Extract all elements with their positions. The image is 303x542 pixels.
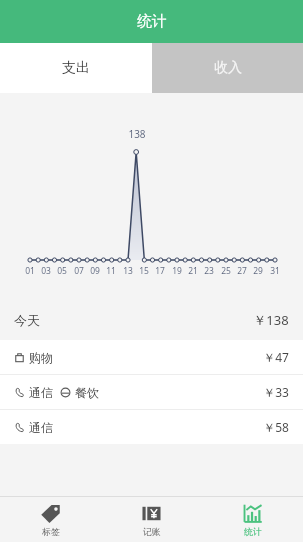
staticText: 138 <box>128 127 146 141</box>
staticText: 25 <box>221 265 231 277</box>
staticText: 统计 <box>137 12 167 31</box>
staticText: 19 <box>172 265 182 277</box>
staticText: 收入 <box>214 59 242 77</box>
staticText: 09 <box>90 265 100 277</box>
staticText: ￥138 <box>253 311 289 329</box>
staticText: 29 <box>253 265 263 277</box>
staticText: 21 <box>188 265 198 277</box>
staticText: 支出 <box>62 59 90 77</box>
staticText: 07 <box>74 265 84 277</box>
button[interactable]: 购物 <box>0 340 303 374</box>
staticText: 05 <box>57 265 67 277</box>
staticText: 购物 <box>29 350 53 365</box>
staticText: ￥47 <box>263 349 289 365</box>
button[interactable]: 今天 <box>0 300 303 340</box>
staticText: 15 <box>139 265 149 277</box>
button[interactable]: 统计 <box>202 497 303 542</box>
staticText: 记账 <box>143 526 161 537</box>
staticText: 餐饮 <box>75 385 99 400</box>
button[interactable]: 标签 <box>0 497 101 542</box>
button[interactable]: 收入 <box>152 43 303 93</box>
staticText: 01 <box>25 265 35 277</box>
staticText: 27 <box>237 265 247 277</box>
button[interactable]: 通信 <box>0 410 303 444</box>
staticText: 统计 <box>244 526 262 537</box>
staticText: 今天 <box>14 312 40 328</box>
staticText: ￥58 <box>263 419 289 435</box>
staticText: 13 <box>123 265 133 277</box>
staticText: 通信 <box>29 420 53 435</box>
staticText: 标签 <box>42 526 60 537</box>
staticText: 11 <box>106 265 116 277</box>
staticText: 23 <box>204 265 214 277</box>
staticText: 31 <box>270 265 280 277</box>
staticText: 通信 <box>29 385 53 400</box>
staticText: 03 <box>41 265 51 277</box>
button[interactable]: 记账 <box>101 497 202 542</box>
button[interactable]: 通信 <box>0 375 303 409</box>
button[interactable]: 支出 <box>0 43 152 93</box>
staticText: 17 <box>155 265 165 277</box>
staticText: ￥33 <box>263 384 289 400</box>
